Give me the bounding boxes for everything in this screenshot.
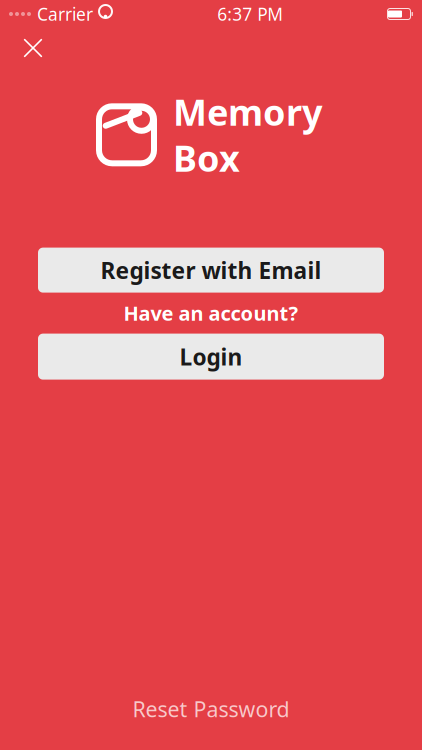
staticText: Box: [173, 134, 240, 182]
staticText: Carrier: [37, 2, 93, 25]
button[interactable]: Login: [38, 334, 384, 380]
staticText: Reset Password: [132, 695, 289, 723]
button[interactable]: Register with Email: [38, 248, 384, 293]
button[interactable]: Have an account?: [38, 293, 384, 334]
staticText: Register with Email: [100, 255, 321, 285]
staticText: Login: [179, 342, 242, 372]
button[interactable]: Close: [11, 26, 55, 70]
staticText: Memory: [173, 88, 323, 136]
button[interactable]: Reset Password: [0, 692, 422, 726]
staticText: Have an account?: [123, 300, 298, 326]
staticText: 6:37 PM: [217, 2, 283, 25]
